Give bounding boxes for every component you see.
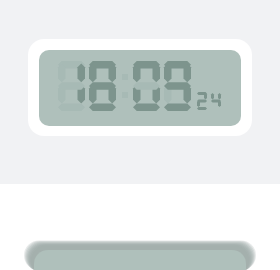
button[interactable]: Digital clock 18:09, 24 hour format: [28, 39, 252, 136]
